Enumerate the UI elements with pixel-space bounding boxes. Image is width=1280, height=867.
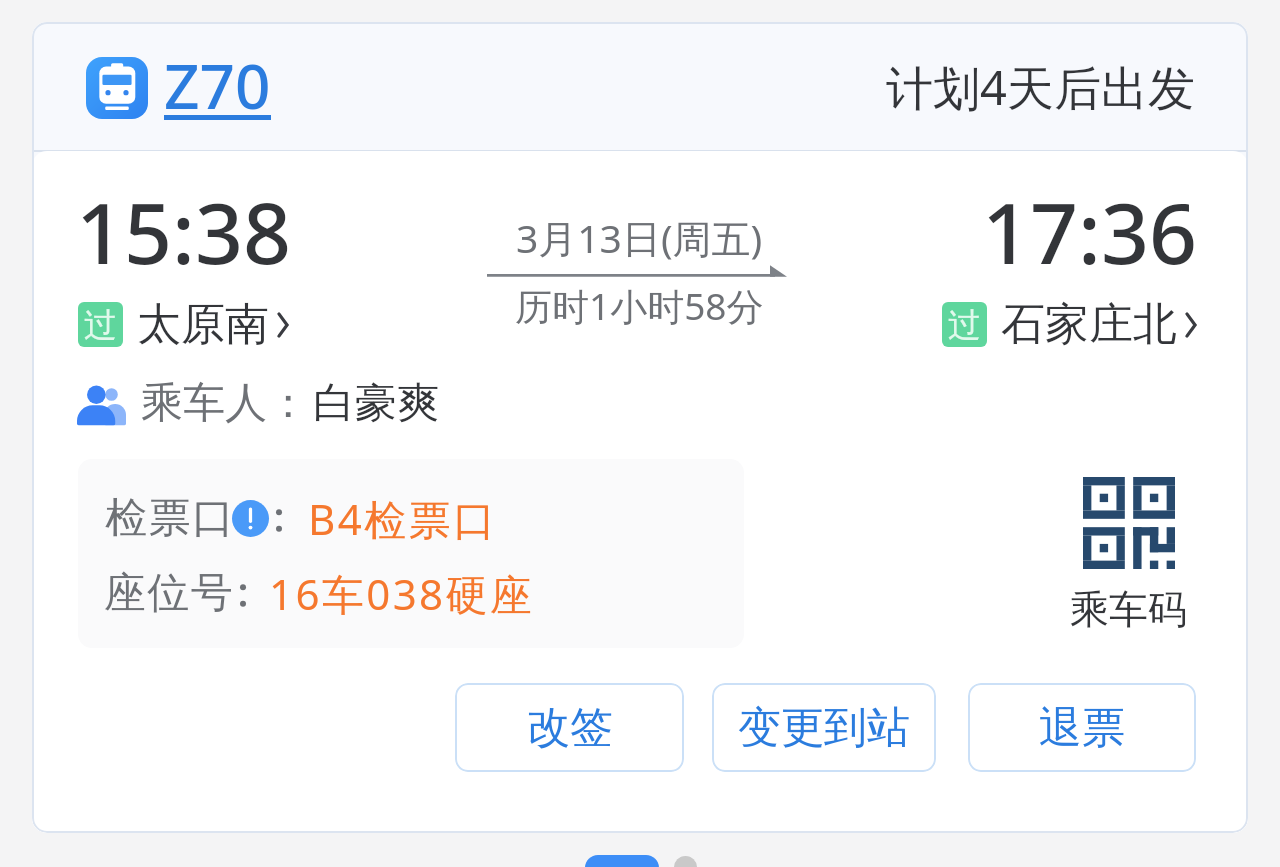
staticText: 3月13日(周五): [516, 211, 763, 264]
staticText: 太原南: [137, 297, 269, 352]
staticText: 检票口: [105, 492, 236, 545]
staticText: 变更到站: [738, 701, 910, 755]
staticText: 乘车人：: [141, 377, 309, 430]
staticText: 退票: [1039, 701, 1125, 755]
staticText: 历时1小时58分: [515, 280, 764, 331]
staticText: 过: [948, 304, 981, 346]
staticText: 16车038硬座: [269, 565, 535, 622]
staticText: 15:38: [76, 174, 292, 288]
button[interactable]: 变更到站: [712, 683, 936, 772]
button[interactable]: 车次: [32, 22, 1248, 151]
staticText: 白豪爽: [313, 377, 439, 430]
staticText: B4检票口: [308, 490, 498, 547]
staticText: 乘车码: [1070, 585, 1187, 634]
button[interactable]: 乘车码: [1064, 471, 1193, 640]
button[interactable]: 检票口说明: [232, 500, 269, 537]
button[interactable]: 乘车人：: [77, 377, 439, 430]
button[interactable]: 过: [78, 297, 289, 352]
staticText: 石家庄北: [1001, 297, 1177, 352]
staticText: Z70: [164, 43, 271, 127]
other: 乘车码: [1083, 477, 1175, 569]
button[interactable]: 退票: [968, 683, 1196, 772]
button[interactable]: 过: [942, 297, 1197, 352]
staticText: 改签: [527, 701, 613, 755]
button[interactable]: 改签: [455, 683, 684, 772]
staticText: 计划4天后出发: [886, 55, 1195, 119]
staticText: 17:36: [982, 174, 1198, 288]
other: 车次: [86, 57, 148, 119]
staticText: 过: [84, 304, 117, 346]
staticText: 座位号: [104, 567, 235, 620]
